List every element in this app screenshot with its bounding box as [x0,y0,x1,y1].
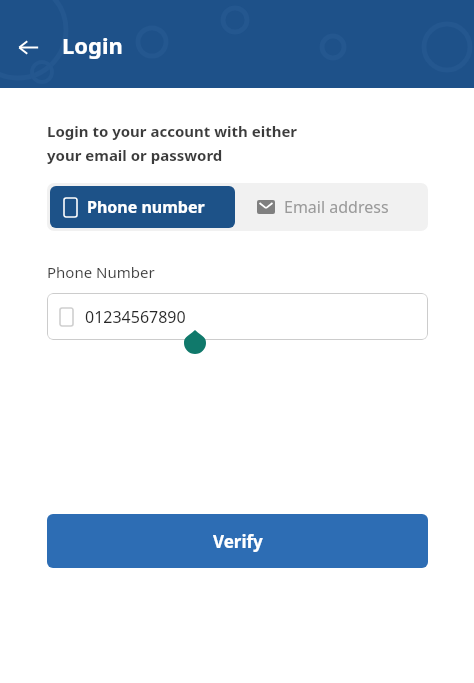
button[interactable]: Back [10,29,46,65]
staticText: Verify [213,530,263,553]
button[interactable]: Email address [235,183,428,231]
button[interactable]: Verify [47,514,428,568]
staticText: Phone Number [47,262,155,282]
staticText: your email or password [47,145,223,165]
staticText: Phone number [87,196,205,218]
staticText: Login [62,30,123,60]
button[interactable]: Phone number [50,186,235,228]
button[interactable]: 01234567890 [47,293,428,340]
staticText: Login to your account with either [47,121,298,141]
staticText: 01234567890 [85,306,186,328]
staticText: Email address [284,196,389,218]
